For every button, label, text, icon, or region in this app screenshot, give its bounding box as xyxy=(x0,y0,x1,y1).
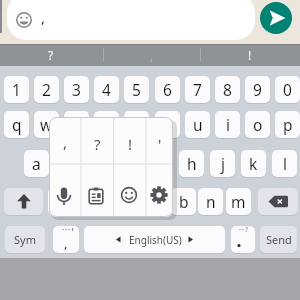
staticText: i xyxy=(226,114,230,135)
button[interactable]: n xyxy=(198,188,223,215)
button[interactable]: h xyxy=(179,150,204,177)
button[interactable]: Sym xyxy=(5,226,45,253)
button[interactable]: 5 xyxy=(124,76,149,103)
staticText: t xyxy=(134,114,140,135)
button[interactable] xyxy=(231,226,255,253)
staticText: English(US) xyxy=(129,233,182,247)
staticText: ? xyxy=(48,47,54,63)
staticText: 7 xyxy=(193,79,202,100)
staticText: w xyxy=(40,114,53,135)
staticText: , xyxy=(64,234,68,252)
staticText: 0 xyxy=(283,79,292,100)
button[interactable]: o xyxy=(245,111,270,138)
staticText: 1 xyxy=(12,79,21,100)
button[interactable]: v xyxy=(141,188,166,215)
staticText: d xyxy=(94,153,104,174)
button[interactable]: a xyxy=(24,150,49,177)
button[interactable]: s xyxy=(55,150,80,177)
button[interactable] xyxy=(53,226,79,253)
button[interactable]: x xyxy=(79,188,104,215)
button[interactable]: f xyxy=(117,150,142,177)
staticText: g xyxy=(156,153,166,174)
staticText: q xyxy=(12,114,22,135)
button[interactable]: 2 xyxy=(34,76,59,103)
staticText: v xyxy=(150,191,158,212)
staticText: c xyxy=(119,191,127,212)
button[interactable]: z xyxy=(48,188,73,215)
staticText: ! xyxy=(248,47,252,63)
staticText: z xyxy=(57,191,65,212)
staticText: , xyxy=(41,7,46,27)
staticText: 9 xyxy=(253,79,262,100)
staticText: 5 xyxy=(132,79,141,100)
button[interactable]: y xyxy=(155,111,180,138)
staticText: n xyxy=(206,191,216,212)
button[interactable] xyxy=(84,226,225,253)
staticText: r xyxy=(103,114,110,135)
button[interactable] xyxy=(258,188,298,215)
button[interactable] xyxy=(147,183,171,207)
button[interactable]: 8 xyxy=(215,76,240,103)
button[interactable]: 0 xyxy=(275,76,300,103)
button[interactable]: w xyxy=(34,111,59,138)
staticText: o xyxy=(253,114,263,135)
button[interactable]: t xyxy=(124,111,149,138)
staticText: m xyxy=(231,191,246,212)
button[interactable]: k xyxy=(241,150,266,177)
button[interactable]: l xyxy=(272,150,297,177)
staticText: ' xyxy=(158,134,162,154)
button[interactable]: j xyxy=(210,150,235,177)
button[interactable] xyxy=(52,184,76,208)
staticText: , xyxy=(150,47,154,63)
button[interactable]: p xyxy=(275,111,300,138)
button[interactable]: g xyxy=(148,150,173,177)
button[interactable]: 4 xyxy=(94,76,119,103)
staticText: k xyxy=(249,153,258,174)
button[interactable]: 7 xyxy=(185,76,210,103)
button[interactable] xyxy=(84,184,108,208)
button[interactable]: Send xyxy=(260,226,297,253)
staticText: b xyxy=(179,191,189,212)
staticText: e xyxy=(72,114,81,135)
staticText: u xyxy=(193,114,203,135)
staticText: s xyxy=(64,153,72,174)
staticText: 2 xyxy=(42,79,51,100)
button[interactable]: u xyxy=(185,111,210,138)
staticText: ? xyxy=(94,134,101,154)
button[interactable]: 3 xyxy=(64,76,89,103)
staticText: Send xyxy=(266,232,292,247)
staticText: ! xyxy=(128,134,133,154)
button[interactable]: 1 xyxy=(4,76,29,103)
button[interactable]: b xyxy=(171,188,196,215)
staticText: l xyxy=(283,153,287,174)
button[interactable]: e xyxy=(64,111,89,138)
staticText: x xyxy=(87,191,96,212)
button[interactable]: q xyxy=(4,111,29,138)
staticText: h xyxy=(187,153,197,174)
staticText: 6 xyxy=(163,79,172,100)
staticText: Sym xyxy=(14,232,36,247)
staticText: a xyxy=(32,153,41,174)
staticText: 8 xyxy=(223,79,232,100)
button[interactable] xyxy=(117,183,141,207)
button[interactable] xyxy=(260,2,292,34)
staticText: f xyxy=(127,153,133,174)
button[interactable]: d xyxy=(86,150,111,177)
button[interactable]: r xyxy=(94,111,119,138)
button[interactable]: c xyxy=(110,188,135,215)
button[interactable] xyxy=(4,188,43,215)
staticText: 4 xyxy=(102,79,111,100)
staticText: p xyxy=(283,114,293,135)
button[interactable]: 6 xyxy=(155,76,180,103)
button[interactable] xyxy=(7,0,255,40)
button[interactable]: i xyxy=(215,111,240,138)
staticText: y xyxy=(164,114,172,135)
staticText: ? xyxy=(245,225,249,235)
button[interactable]: m xyxy=(226,188,251,215)
staticText: 3 xyxy=(72,79,81,100)
staticText: j xyxy=(221,153,225,174)
button[interactable]: 9 xyxy=(245,76,270,103)
staticText: , xyxy=(63,132,68,152)
